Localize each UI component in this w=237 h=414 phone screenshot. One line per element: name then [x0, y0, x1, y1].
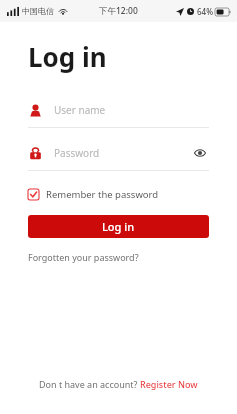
staticText: Log in — [28, 39, 107, 74]
staticText: Remember the password — [46, 188, 159, 201]
staticText: Register Now — [140, 378, 198, 390]
button[interactable]: Forgotten your password? — [28, 248, 139, 266]
staticText: 下午12:00 — [99, 5, 138, 17]
button[interactable]: User name — [28, 97, 209, 128]
button[interactable]: Password — [28, 140, 209, 171]
button[interactable]: Show password — [191, 144, 209, 162]
button[interactable]: Log in — [28, 215, 209, 238]
staticText: Don t have an account? — [39, 378, 140, 390]
staticText: 64% — [197, 6, 213, 17]
button[interactable]: Remember the password — [28, 186, 159, 203]
staticText: Password — [54, 146, 191, 160]
staticText: 中国电信 — [22, 6, 54, 16]
staticText: Forgotten your password? — [28, 251, 139, 263]
button[interactable]: Register Now — [140, 378, 198, 390]
staticText: User name — [54, 103, 209, 117]
staticText: Log in — [102, 219, 135, 234]
